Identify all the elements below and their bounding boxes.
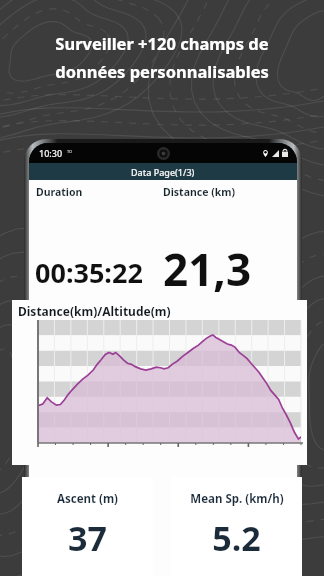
- staticText: Duration: [36, 185, 83, 199]
- button[interactable]: Ascent (m): [22, 477, 153, 576]
- button[interactable]: Mean Sp. (km/h): [171, 477, 302, 576]
- staticText: 00:35:22: [35, 254, 143, 291]
- button[interactable]: Data Page(1/3): [29, 163, 297, 180]
- staticText: données personnalisables: [55, 60, 269, 82]
- staticText: Ascent (m): [57, 491, 118, 507]
- staticText: 21,3: [163, 239, 252, 299]
- staticText: ᵀᴰ: [67, 149, 73, 157]
- staticText: 37: [68, 515, 107, 561]
- staticText: Distance(km)/Altitude(m): [18, 303, 171, 319]
- staticText: Distance (km): [163, 185, 236, 199]
- staticText: Data Page(1/3): [131, 166, 195, 178]
- staticText: Surveiller +120 champs de: [55, 32, 269, 54]
- staticText: 10:30: [39, 147, 63, 159]
- staticText: 5.2: [212, 515, 261, 561]
- button[interactable]: Distance(km)/Altitude(m): [12, 300, 307, 465]
- staticText: Mean Sp. (km/h): [190, 491, 284, 507]
